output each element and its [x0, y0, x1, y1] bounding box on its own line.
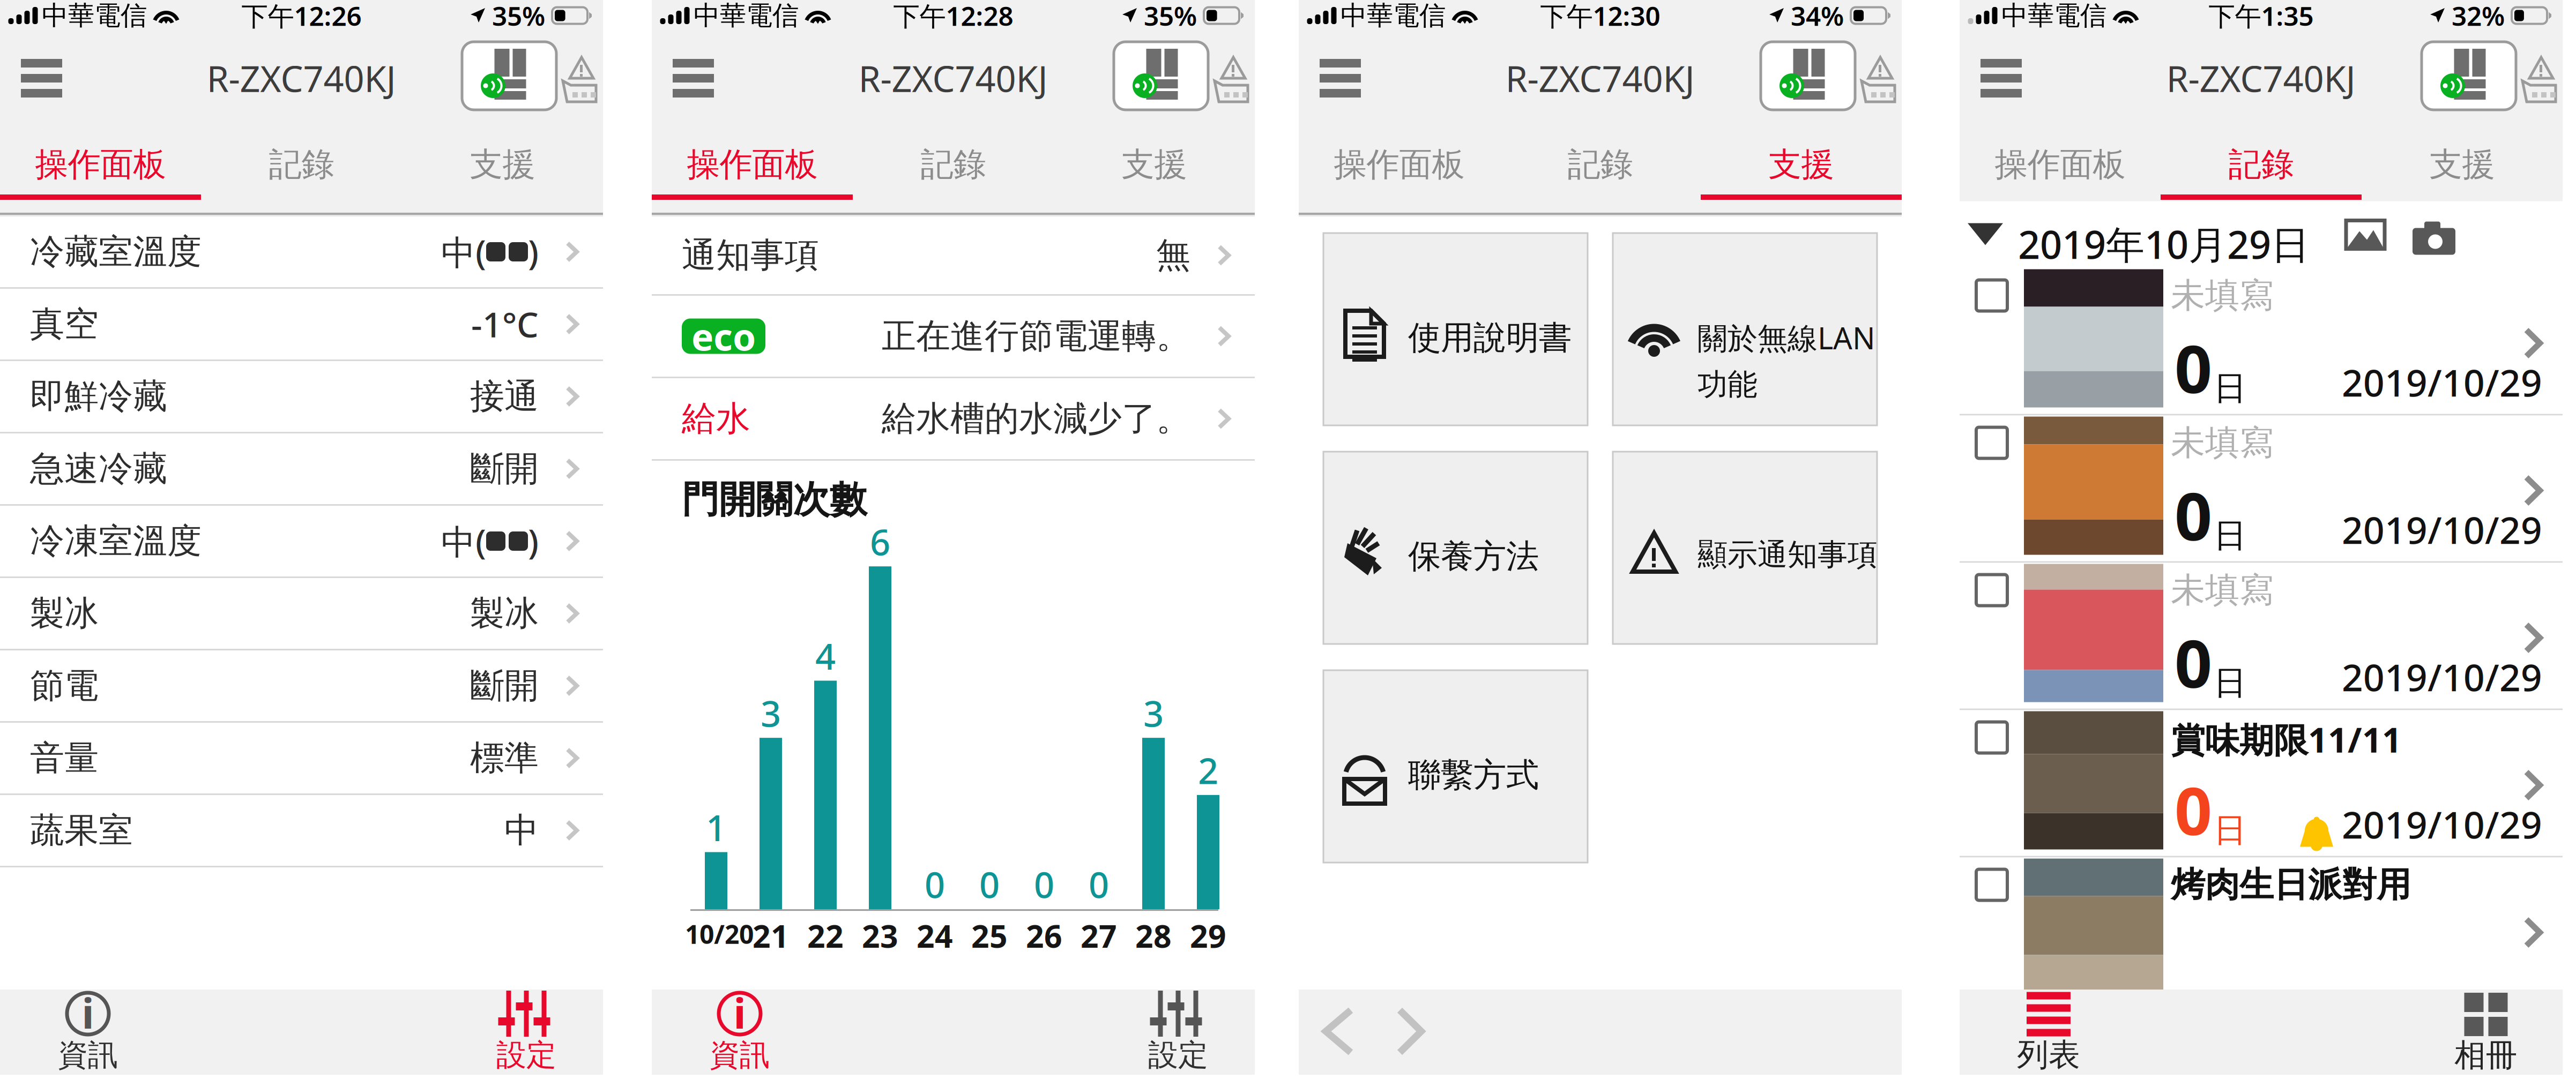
- staticText: eco: [691, 312, 756, 361]
- button[interactable]: 操作面板: [652, 125, 853, 216]
- button[interactable]: 支援: [402, 125, 603, 216]
- button[interactable]: Menu: [652, 31, 735, 125]
- button[interactable]: Notifications: [561, 43, 598, 93]
- button[interactable]: Notifications: [1213, 43, 1249, 93]
- button[interactable]: Notifications: [2521, 43, 2557, 93]
- staticText: 給水: [682, 398, 750, 440]
- staticText: 設定: [1148, 1037, 1208, 1074]
- button[interactable]: 設定: [473, 990, 580, 1075]
- button[interactable]: Photos: [2338, 212, 2393, 257]
- button[interactable]: Notifications: [1860, 43, 1896, 93]
- staticText: 29: [1190, 915, 1226, 956]
- button[interactable]: 即鮮冷藏: [0, 361, 603, 433]
- button[interactable]: Menu: [0, 31, 83, 125]
- button[interactable]: i: [686, 990, 793, 1075]
- button[interactable]: Appliance status: [462, 42, 556, 110]
- button[interactable]: 操作面板: [0, 125, 201, 216]
- staticText: 0: [979, 860, 1000, 908]
- staticText: 記錄: [1568, 144, 1633, 185]
- button[interactable]: 列表: [1995, 990, 2102, 1075]
- button[interactable]: Appliance status: [1761, 42, 1855, 110]
- button[interactable]: 記錄: [201, 125, 402, 216]
- staticText: 中: [504, 809, 539, 851]
- button[interactable]: 節電: [0, 650, 603, 723]
- button[interactable]: 急速冷藏: [0, 433, 603, 506]
- button[interactable]: 冷凍室溫度: [0, 506, 603, 578]
- button[interactable]: Collapse: [1961, 217, 2009, 252]
- button[interactable]: 冷藏室溫度: [0, 216, 603, 289]
- button[interactable]: eco: [652, 296, 1255, 378]
- button[interactable]: Menu: [1299, 31, 1382, 125]
- staticText: 相冊: [2454, 1036, 2518, 1075]
- staticText: -1°C: [471, 301, 539, 347]
- staticText: 日: [2214, 515, 2246, 556]
- staticText: 列表: [2017, 1036, 2080, 1074]
- staticText: 2019年10月29日: [2018, 218, 2310, 270]
- button[interactable]: Camera: [2406, 212, 2462, 258]
- button[interactable]: Back: [1316, 1000, 1357, 1062]
- button[interactable]: 記錄: [853, 125, 1054, 216]
- button[interactable]: 賞味期限11/11: [1960, 710, 2563, 857]
- button[interactable]: 給水: [652, 378, 1255, 461]
- button[interactable]: 製冰: [0, 578, 603, 650]
- staticText: 日: [2214, 663, 2246, 703]
- button[interactable]: 通知事項: [652, 216, 1255, 296]
- button[interactable]: 支援: [1054, 125, 1255, 216]
- button[interactable]: 未填寫: [1960, 415, 2563, 563]
- staticText: 操作面板: [1995, 144, 2125, 185]
- staticText: 21: [753, 915, 789, 956]
- button[interactable]: 關於無線LAN: [1613, 233, 1877, 425]
- button[interactable]: 顯示通知事項: [1613, 452, 1877, 644]
- staticText: 聯繫方式: [1408, 755, 1539, 795]
- staticText: 0: [2175, 324, 2212, 411]
- button[interactable]: 未填寫: [1960, 563, 2563, 710]
- button[interactable]: i: [34, 990, 142, 1075]
- staticText: 26: [1026, 915, 1062, 956]
- staticText: 中(: [441, 229, 486, 275]
- staticText: 0: [1034, 860, 1054, 908]
- button[interactable]: 支援: [2362, 125, 2563, 216]
- staticText: 蔬果室: [30, 809, 133, 851]
- button[interactable]: 記錄: [2161, 125, 2362, 216]
- staticText: 3: [1143, 689, 1164, 737]
- button[interactable]: 使用說明書: [1323, 233, 1588, 425]
- staticText: 給水槽的水減少了。: [882, 398, 1190, 440]
- button[interactable]: Appliance status: [1114, 42, 1208, 110]
- staticText: 急速冷藏: [30, 448, 167, 490]
- staticText: 2019/10/29: [2342, 505, 2542, 554]
- staticText: 下午1:35: [2209, 0, 2314, 33]
- button[interactable]: 未填寫: [1960, 268, 2563, 415]
- button[interactable]: 操作面板: [1299, 125, 1500, 216]
- button[interactable]: 蔬果室: [0, 795, 603, 867]
- staticText: 2019/10/29: [2342, 652, 2542, 702]
- staticText: R-ZXC740KJ: [2166, 54, 2355, 102]
- staticText: 斷開: [470, 448, 539, 490]
- button[interactable]: 支援: [1701, 125, 1902, 216]
- button[interactable]: 相冊: [2432, 990, 2540, 1075]
- staticText: 未填寫: [2171, 422, 2274, 464]
- staticText: 23: [862, 915, 898, 956]
- button[interactable]: 烤肉生日派對用: [1960, 857, 2563, 1005]
- staticText: 0: [2175, 766, 2212, 853]
- staticText: 中華電信: [2001, 0, 2106, 32]
- staticText: 保養方法: [1408, 536, 1539, 577]
- button[interactable]: 設定: [1125, 990, 1232, 1075]
- button[interactable]: 真空: [0, 289, 603, 361]
- button[interactable]: 保養方法: [1323, 452, 1588, 644]
- staticText: 4: [815, 632, 836, 680]
- button[interactable]: 音量: [0, 723, 603, 795]
- button[interactable]: Forward: [1390, 1000, 1431, 1062]
- staticText: 通知事項: [682, 234, 819, 276]
- staticText: 22: [807, 915, 844, 956]
- button[interactable]: Appliance status: [2422, 42, 2516, 110]
- staticText: 日: [2214, 368, 2246, 409]
- staticText: 記錄: [921, 144, 986, 185]
- button[interactable]: 記錄: [1500, 125, 1701, 216]
- staticText: 3: [761, 689, 781, 737]
- button[interactable]: Menu: [1960, 31, 2043, 125]
- staticText: 35%: [492, 0, 545, 33]
- button[interactable]: 聯繫方式: [1323, 670, 1588, 863]
- staticText: 賞味期限11/11: [2171, 717, 2402, 762]
- button[interactable]: 操作面板: [1960, 125, 2161, 216]
- staticText: 節電: [30, 665, 99, 707]
